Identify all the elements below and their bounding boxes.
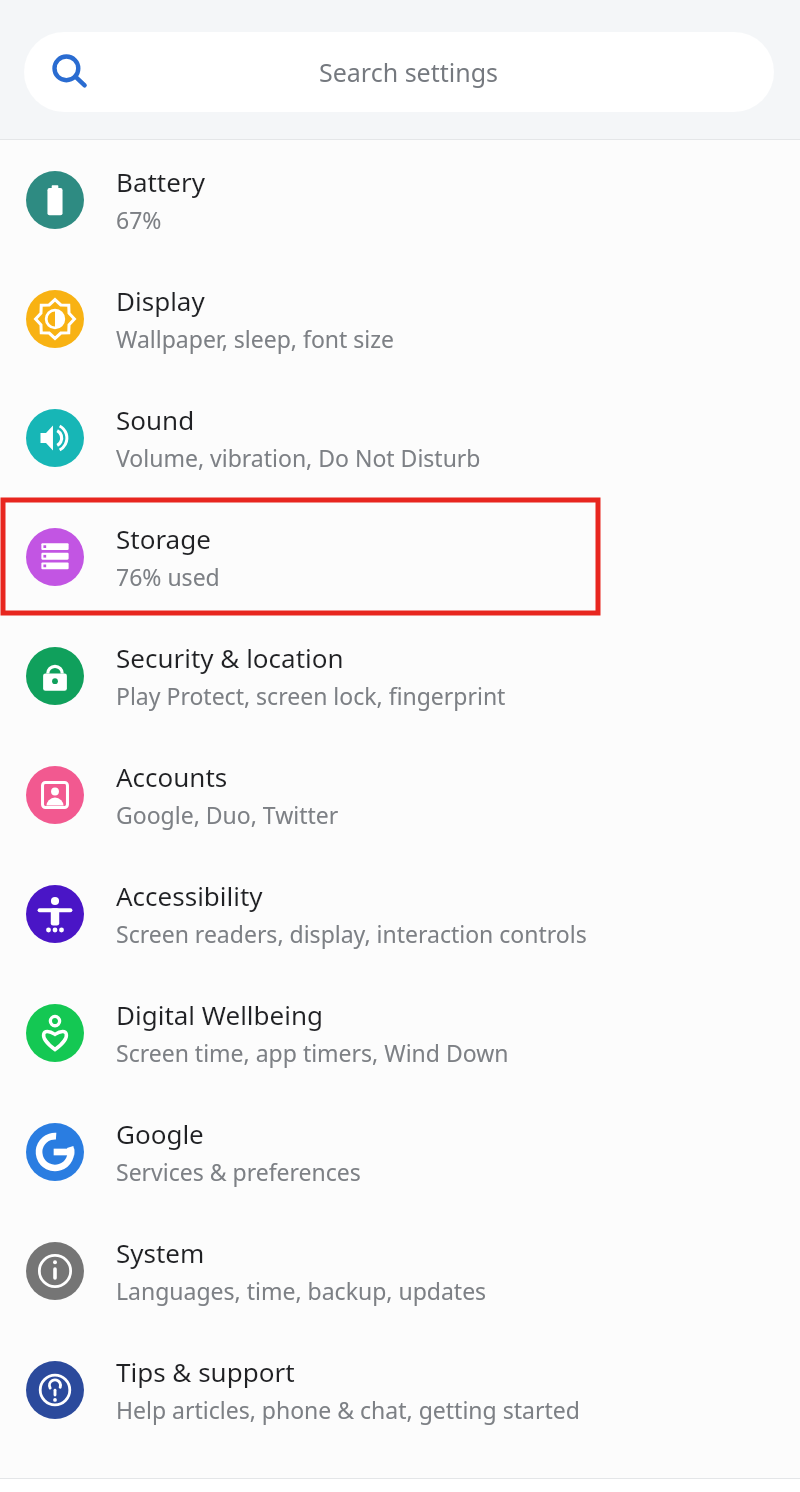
staticText: Accessibility: [116, 878, 263, 913]
staticText: 67%: [116, 204, 162, 235]
button[interactable]: Security & location: [0, 616, 800, 735]
staticText: Services & preferences: [116, 1156, 361, 1187]
button[interactable]: Accounts: [0, 735, 800, 854]
button[interactable]: Search settings: [24, 32, 774, 112]
staticText: Display: [116, 283, 205, 318]
button[interactable]: Accessibility: [0, 854, 800, 973]
staticText: Battery: [116, 164, 205, 199]
staticText: Languages, time, backup, updates: [116, 1275, 487, 1306]
staticText: Tips & support: [116, 1354, 295, 1389]
staticText: Google: [116, 1116, 204, 1151]
staticText: Screen readers, display, interaction con…: [116, 918, 587, 949]
staticText: Help articles, phone & chat, getting sta…: [116, 1394, 580, 1425]
staticText: Google, Duo, Twitter: [116, 799, 339, 830]
staticText: Accounts: [116, 759, 228, 794]
staticText: Security & location: [116, 640, 344, 675]
staticText: Search settings: [319, 55, 499, 89]
button[interactable]: Digital Wellbeing: [0, 973, 800, 1092]
staticText: Wallpaper, sleep, font size: [116, 323, 395, 354]
button[interactable]: Battery: [0, 140, 800, 259]
button[interactable]: System: [0, 1211, 800, 1330]
staticText: Screen time, app timers, Wind Down: [116, 1037, 509, 1068]
button[interactable]: Display: [0, 259, 800, 378]
button[interactable]: Tips & support: [0, 1330, 800, 1449]
staticText: Play Protect, screen lock, fingerprint: [116, 680, 506, 711]
staticText: Sound: [116, 402, 195, 437]
button[interactable]: Sound: [0, 378, 800, 497]
staticText: Storage: [116, 521, 211, 556]
staticText: 76% used: [116, 561, 220, 592]
button[interactable]: Storage: [0, 497, 800, 616]
staticText: Digital Wellbeing: [116, 997, 323, 1032]
button[interactable]: Google: [0, 1092, 800, 1211]
staticText: System: [116, 1235, 205, 1270]
staticText: Volume, vibration, Do Not Disturb: [116, 442, 481, 473]
